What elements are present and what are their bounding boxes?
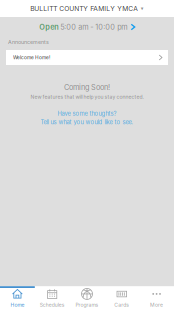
button[interactable]: Home [0, 286, 35, 310]
staticText: More [150, 302, 163, 308]
staticText: ▾ [141, 5, 144, 12]
staticText: Open [39, 23, 58, 31]
button[interactable]: BULLITT COUNTY FAMILY YMCA [0, 0, 174, 17]
staticText: Cards [114, 302, 129, 308]
staticText: 5:00 am - 10:00 pm [58, 23, 127, 31]
button[interactable]: More [139, 286, 174, 310]
staticText: Coming Soon! [64, 83, 110, 92]
staticText: Have some thoughts? [57, 110, 116, 117]
button[interactable]: Have some thoughts? [40, 110, 133, 126]
button[interactable]: Cards [104, 286, 139, 310]
staticText: Schedules [40, 302, 65, 308]
staticText: Programs [75, 302, 98, 308]
staticText: Announcements [8, 39, 49, 45]
button[interactable]: Welcome Home! [6, 50, 168, 65]
staticText: Home [10, 302, 24, 308]
staticText: Tell us what you would like to see. [40, 119, 133, 126]
staticText: New features that will help you stay con… [30, 94, 143, 100]
button[interactable]: Schedules [35, 286, 70, 310]
staticText: Welcome Home! [13, 55, 50, 60]
staticText: BULLITT COUNTY FAMILY YMCA [30, 4, 138, 13]
button[interactable]: Open [0, 17, 174, 37]
button[interactable]: Programs [70, 286, 104, 310]
